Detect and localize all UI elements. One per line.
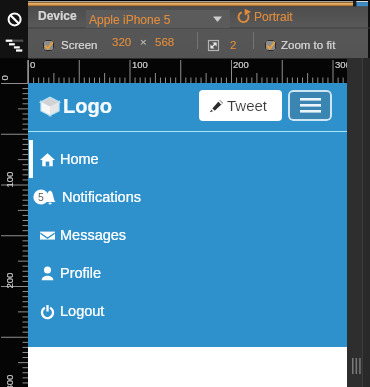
staticText: 320 — [112, 36, 132, 49]
button[interactable]: Rotate orientation — [237, 8, 293, 25]
staticText: Logo — [63, 95, 112, 117]
staticText: 5 — [38, 191, 44, 203]
staticText: Screen — [61, 39, 98, 52]
button[interactable]: Screen — [43, 34, 98, 56]
staticText: Profile — [60, 265, 102, 281]
button[interactable]: Menu — [288, 90, 332, 121]
staticText: Home — [60, 151, 99, 167]
staticText: 568 — [155, 36, 175, 49]
button[interactable]: Zoom to fit — [265, 34, 336, 56]
button[interactable]: Zoom scale — [208, 34, 237, 56]
button[interactable]: Tweet — [199, 90, 282, 121]
staticText: 2 — [230, 39, 237, 52]
other: Rotate orientation — [237, 10, 250, 23]
staticText: 100 — [3, 171, 14, 187]
staticText: Notifications — [62, 189, 141, 205]
staticText: Portrait — [254, 10, 293, 23]
button[interactable]: Logo — [41, 91, 112, 121]
button[interactable]: 5 — [28, 178, 347, 216]
button[interactable]: Messages — [28, 216, 347, 254]
staticText: Tweet — [227, 97, 268, 114]
staticText: × — [140, 36, 147, 49]
staticText: 200 — [233, 59, 249, 70]
staticText: Logout — [60, 303, 105, 319]
staticText: Device — [38, 9, 77, 22]
staticText: Apple iPhone 5 — [89, 13, 171, 26]
staticText: 100 — [132, 59, 148, 70]
button[interactable]: Profile — [28, 254, 347, 292]
button[interactable]: Apple iPhone 5 — [86, 10, 230, 28]
staticText: 300 — [335, 59, 351, 70]
other: Zoom scale — [208, 40, 219, 51]
staticText: 200 — [3, 272, 14, 288]
staticText: 300 — [3, 374, 14, 387]
button[interactable]: Home — [28, 140, 347, 178]
staticText: Zoom to fit — [281, 39, 336, 52]
staticText: 0 — [30, 59, 36, 70]
button[interactable]: Logout — [28, 292, 347, 330]
staticText: 0 — [0, 74, 9, 80]
staticText: Messages — [60, 227, 127, 243]
